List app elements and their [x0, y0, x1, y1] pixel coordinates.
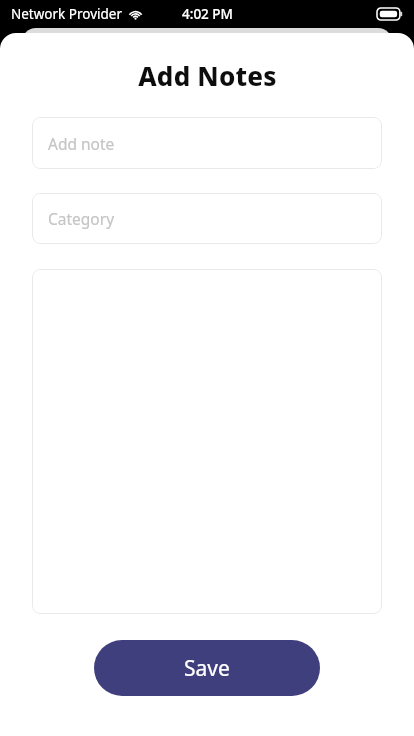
- staticText: Save: [184, 654, 230, 683]
- staticText: Category: [48, 208, 115, 229]
- staticText: Add Notes: [138, 58, 277, 93]
- staticText: 4:02 PM: [182, 5, 233, 23]
- button[interactable]: Add note: [32, 117, 382, 169]
- staticText: Network Provider: [11, 5, 123, 23]
- button[interactable]: Save: [94, 640, 320, 696]
- button[interactable]: Category: [32, 193, 382, 244]
- staticText: Add note: [48, 133, 115, 154]
